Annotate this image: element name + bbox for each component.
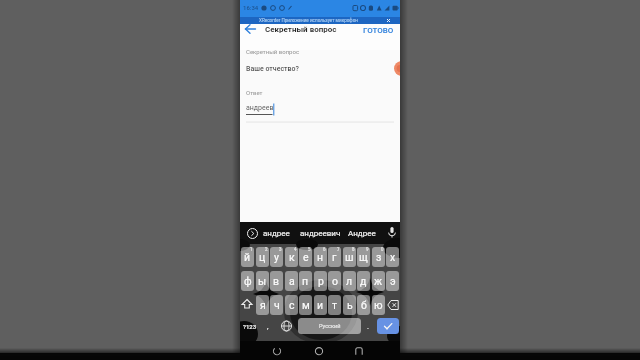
staticText: и <box>317 299 324 311</box>
staticText: н <box>317 251 324 263</box>
button[interactable]: з <box>372 247 385 267</box>
button[interactable]: и <box>314 295 327 315</box>
button[interactable]: ч <box>270 295 283 315</box>
button[interactable]: н <box>314 247 327 267</box>
staticText: 4 <box>294 247 297 252</box>
button[interactable]: Русский <box>298 318 361 334</box>
button[interactable]: ю <box>372 295 385 315</box>
staticText: ч <box>274 299 280 311</box>
button[interactable]: , <box>262 318 274 334</box>
staticText: з <box>376 251 382 263</box>
button[interactable] <box>271 345 283 357</box>
staticText: м <box>302 299 310 311</box>
staticText: е <box>303 251 309 263</box>
button[interactable]: . <box>363 318 373 334</box>
staticText: ю <box>374 299 383 311</box>
staticText: 16:34 <box>243 4 259 11</box>
staticText: г <box>332 251 337 263</box>
staticText: б <box>361 299 367 311</box>
staticText: 1 <box>250 247 253 252</box>
button[interactable]: а <box>285 271 298 291</box>
button[interactable]: ж <box>372 271 385 291</box>
button[interactable]: д <box>357 271 370 291</box>
staticText: 5 <box>308 247 311 252</box>
button[interactable] <box>279 318 294 334</box>
staticText: а <box>289 275 295 287</box>
button[interactable]: х <box>386 247 399 267</box>
button[interactable] <box>241 22 259 40</box>
staticText: д <box>360 275 367 287</box>
button[interactable]: ц <box>256 247 269 267</box>
staticText: л <box>346 275 353 287</box>
staticText: Андрее <box>348 229 376 238</box>
staticText: Секретный вопрос <box>265 25 337 34</box>
staticText: андрее <box>263 229 290 238</box>
button[interactable]: п <box>299 271 312 291</box>
staticText: т <box>332 299 338 311</box>
staticText: 0 <box>381 247 384 252</box>
staticText: 3 <box>279 247 282 252</box>
button[interactable]: ?123 <box>240 318 260 334</box>
staticText: Ваше отчество? <box>246 65 299 73</box>
button[interactable] <box>313 345 325 357</box>
staticText: й <box>244 251 251 263</box>
button[interactable] <box>377 318 399 334</box>
button[interactable]: т <box>328 295 341 315</box>
button[interactable]: й <box>241 247 254 267</box>
button[interactable]: у <box>270 247 283 267</box>
staticText: ж <box>374 275 383 287</box>
button[interactable]: ы <box>256 271 269 291</box>
button[interactable]: я <box>256 295 269 315</box>
button[interactable] <box>240 295 254 315</box>
button[interactable]: ь <box>343 295 356 315</box>
staticText: 9 <box>366 247 369 252</box>
staticText: в <box>273 275 280 287</box>
staticText: ?123 <box>243 323 257 330</box>
button[interactable]: с <box>285 295 298 315</box>
button[interactable]: ш <box>343 247 356 267</box>
staticText: ц <box>259 251 266 263</box>
button[interactable]: г <box>328 247 341 267</box>
button[interactable]: ф <box>241 271 254 291</box>
staticText: 7 <box>337 247 340 252</box>
staticText: Ответ <box>246 89 263 96</box>
button[interactable] <box>386 295 400 315</box>
staticText: у <box>274 251 279 263</box>
button[interactable] <box>247 228 258 239</box>
button[interactable]: р <box>314 271 327 291</box>
button[interactable]: б <box>357 295 370 315</box>
button[interactable]: ГОТОВО <box>358 21 398 39</box>
staticText: Русский <box>319 323 341 330</box>
button[interactable]: е <box>299 247 312 267</box>
staticText: я <box>260 299 266 311</box>
button[interactable]: к <box>285 247 298 267</box>
staticText: 8 <box>352 247 355 252</box>
button[interactable]: м <box>299 295 312 315</box>
staticText: , <box>267 322 269 331</box>
button[interactable] <box>353 345 365 357</box>
staticText: 6 <box>323 247 326 252</box>
button[interactable]: Андрее <box>348 227 376 240</box>
staticText: к <box>289 251 295 263</box>
staticText: . <box>367 322 369 331</box>
staticText: 2 <box>265 247 268 252</box>
button[interactable]: л <box>343 271 356 291</box>
staticText: ГОТОВО <box>363 26 394 35</box>
button[interactable]: XRecorder Приложение использует микрофон <box>240 17 400 24</box>
staticText: э <box>390 275 396 287</box>
button[interactable]: о <box>328 271 341 291</box>
staticText: р <box>318 275 324 287</box>
staticText: о <box>332 275 338 287</box>
staticText: ф <box>244 275 252 287</box>
staticText: с <box>289 299 295 311</box>
staticText: андреев <box>246 104 274 112</box>
staticText: Секретный вопрос <box>246 48 300 55</box>
button[interactable]: андрее <box>263 227 290 240</box>
staticText: п <box>302 275 309 287</box>
button[interactable]: в <box>270 271 283 291</box>
staticText: ш <box>345 251 354 263</box>
staticText: щ <box>359 251 368 263</box>
button[interactable]: щ <box>357 247 370 267</box>
button[interactable]: андреевич <box>300 227 341 240</box>
button[interactable]: э <box>386 271 399 291</box>
